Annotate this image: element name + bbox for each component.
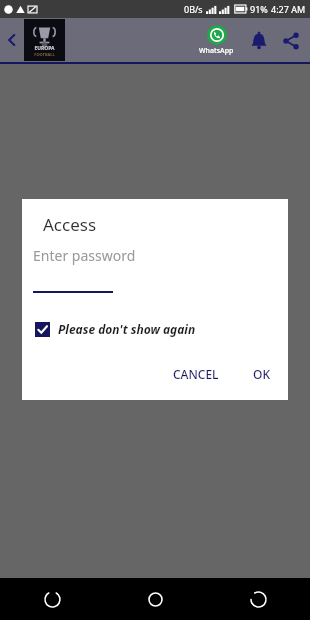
staticText: CANCEL bbox=[173, 366, 219, 382]
button[interactable]: Please don't show again bbox=[35, 319, 202, 339]
staticText: 0B/s bbox=[184, 3, 203, 15]
button[interactable]: WhatsApp bbox=[195, 23, 238, 58]
button[interactable]: OK bbox=[247, 360, 276, 388]
staticText: Please don't show again bbox=[58, 321, 196, 337]
button[interactable]: Share bbox=[276, 26, 306, 56]
button[interactable]: Back bbox=[207, 578, 310, 620]
staticText: 91% bbox=[250, 3, 268, 15]
staticText: Access bbox=[43, 213, 97, 236]
staticText: Enter password bbox=[33, 246, 136, 265]
button[interactable]: Back bbox=[0, 28, 24, 52]
button[interactable]: CANCEL bbox=[167, 360, 225, 388]
button[interactable]: Europa League bbox=[24, 19, 65, 61]
button[interactable]: Recents bbox=[0, 578, 104, 620]
staticText: WhatsApp bbox=[199, 46, 234, 56]
staticText: 4:27 AM bbox=[271, 3, 306, 15]
button[interactable]: Home bbox=[104, 578, 207, 620]
button[interactable]: Notifications bbox=[244, 26, 274, 56]
staticText: EUROPA bbox=[34, 45, 55, 52]
staticText: FOOTBALL bbox=[34, 52, 55, 57]
staticText: OK bbox=[253, 366, 270, 382]
